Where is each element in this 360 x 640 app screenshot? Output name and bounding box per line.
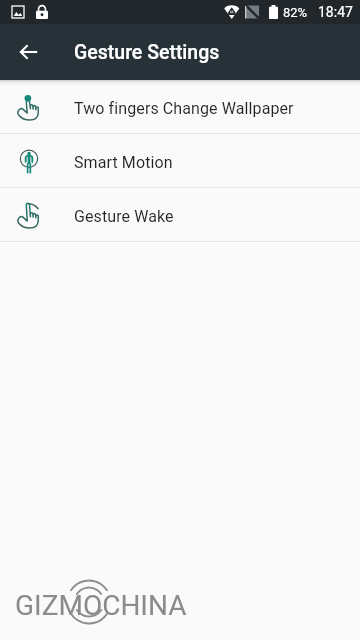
staticText: Gesture Settings xyxy=(74,41,220,64)
staticText: Smart Motion xyxy=(74,153,173,172)
button[interactable]: Two fingers Change Wallpaper xyxy=(0,80,360,133)
staticText: Two fingers Change Wallpaper xyxy=(74,99,294,118)
staticText: 82% xyxy=(283,5,308,20)
staticText: GIZMOCHINA xyxy=(15,589,187,622)
staticText: Gesture Wake xyxy=(74,207,174,226)
staticText: 18:47 xyxy=(318,4,353,20)
button[interactable]: Back xyxy=(10,34,46,70)
button[interactable]: Smart Motion xyxy=(0,134,360,187)
button[interactable]: Gesture Wake xyxy=(0,188,360,241)
